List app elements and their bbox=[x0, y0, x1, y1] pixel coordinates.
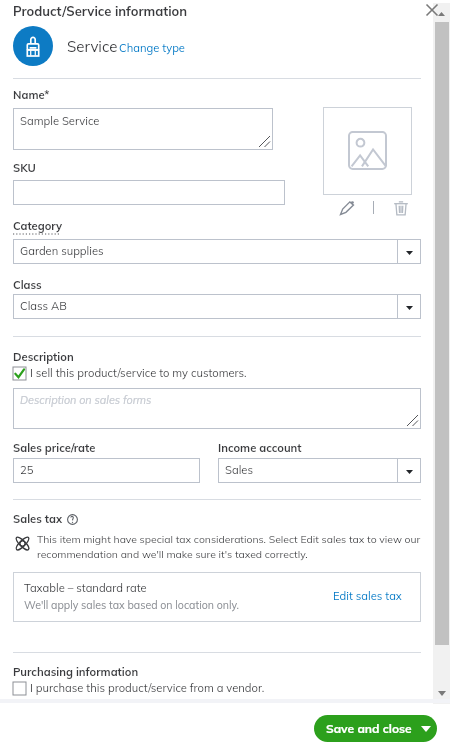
staticText: Sales bbox=[225, 463, 253, 477]
staticText: Name* bbox=[13, 88, 50, 102]
staticText: Save and close bbox=[326, 721, 412, 736]
staticText: Sample Service bbox=[20, 114, 100, 128]
staticText: This item might have special tax conside… bbox=[37, 533, 421, 560]
staticText: Category bbox=[13, 219, 63, 233]
staticText: We'll apply sales tax based on location … bbox=[24, 598, 240, 611]
button[interactable]: Class AB bbox=[13, 294, 421, 319]
staticText: Sales tax bbox=[13, 512, 63, 526]
staticText: I purchase this product/service from a v… bbox=[30, 681, 265, 695]
button[interactable]: Close bbox=[425, 3, 439, 17]
button[interactable]: Help bbox=[67, 514, 78, 525]
staticText: Sales price/rate bbox=[13, 441, 96, 455]
button[interactable]: Change type bbox=[119, 41, 185, 55]
button[interactable]: Edit sales tax bbox=[333, 589, 402, 603]
staticText: Class AB bbox=[20, 299, 67, 313]
button[interactable]: Garden supplies bbox=[13, 239, 421, 264]
button[interactable]: Service icon bbox=[13, 26, 53, 66]
staticText: Class bbox=[13, 278, 42, 292]
staticText: Service bbox=[67, 37, 118, 56]
button[interactable]: Description on sales forms bbox=[13, 388, 421, 429]
button[interactable]: Sales bbox=[218, 458, 421, 483]
button[interactable] bbox=[13, 180, 285, 205]
button[interactable]: Add image bbox=[323, 107, 412, 195]
button[interactable]: Save and close bbox=[314, 715, 437, 742]
staticText: Income account bbox=[218, 441, 302, 455]
button[interactable]: Delete image bbox=[392, 199, 410, 217]
staticText: Taxable – standard rate bbox=[24, 581, 147, 595]
button[interactable]: Edit image bbox=[338, 199, 356, 217]
staticText: Garden supplies bbox=[20, 244, 104, 258]
staticText: 25 bbox=[20, 463, 34, 477]
staticText: Description on sales forms bbox=[20, 393, 152, 407]
staticText: Edit sales tax bbox=[333, 589, 402, 603]
button[interactable]: 25 bbox=[13, 458, 200, 483]
staticText: SKU bbox=[13, 161, 36, 175]
staticText: Product/Service information bbox=[13, 3, 188, 19]
staticText: Description bbox=[13, 350, 74, 364]
staticText: Change type bbox=[119, 41, 185, 55]
button[interactable]: I purchase this product/service from a v… bbox=[13, 681, 265, 695]
button[interactable]: Sample Service bbox=[13, 108, 273, 150]
staticText: Purchasing information bbox=[13, 665, 139, 679]
staticText: I sell this product/service to my custom… bbox=[30, 366, 247, 380]
button[interactable]: I sell this product/service to my custom… bbox=[13, 366, 247, 380]
